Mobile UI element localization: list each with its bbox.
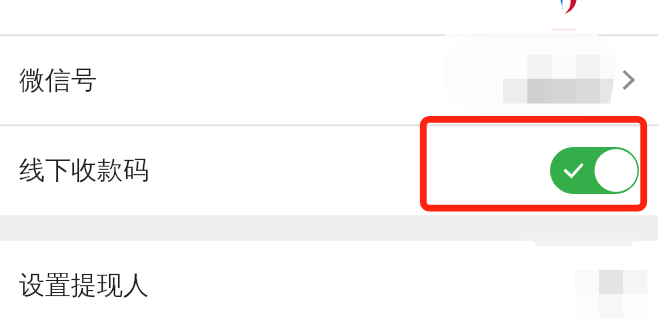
staticText: 设置提现人 xyxy=(19,269,149,302)
other: Open 微信号 xyxy=(619,67,643,97)
button[interactable]: 微信号 xyxy=(0,36,658,125)
button[interactable]: 线下收款码 switch, on xyxy=(550,147,639,194)
staticText: 线下收款码 xyxy=(19,154,149,187)
button[interactable]: 设置提现人 xyxy=(0,241,658,321)
button[interactable]: 线下收款码 xyxy=(0,125,658,215)
staticText: 微信号 xyxy=(19,64,97,97)
